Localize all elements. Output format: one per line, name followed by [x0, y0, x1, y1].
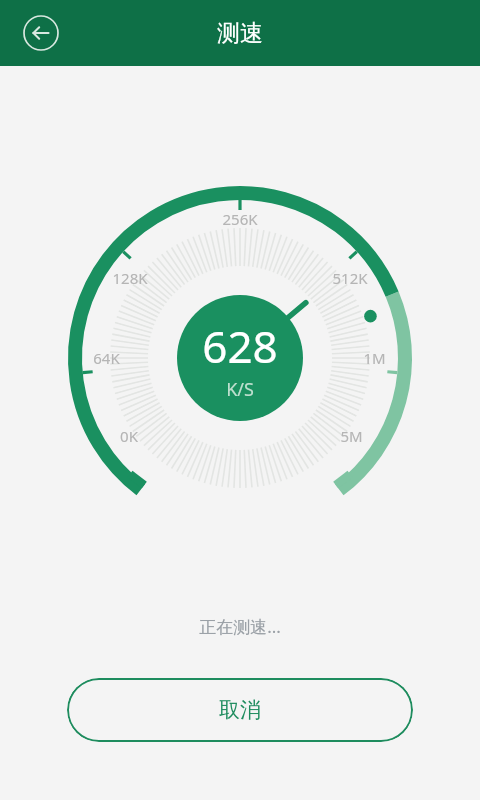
button[interactable]: 取消 — [67, 678, 413, 742]
staticText: 0K — [120, 426, 138, 446]
staticText: 5M — [340, 426, 363, 446]
staticText: 正在测速... — [199, 615, 281, 638]
button[interactable]: Back — [19, 11, 63, 55]
staticText: 1M — [363, 348, 386, 368]
staticText: 128K — [112, 268, 148, 288]
staticText: 628 — [202, 316, 278, 376]
staticText: 测速 — [217, 19, 263, 48]
staticText: 取消 — [219, 697, 261, 723]
staticText: K/S — [226, 377, 254, 402]
staticText: 512K — [332, 268, 368, 288]
staticText: 64K — [93, 348, 120, 368]
staticText: 256K — [222, 209, 258, 229]
